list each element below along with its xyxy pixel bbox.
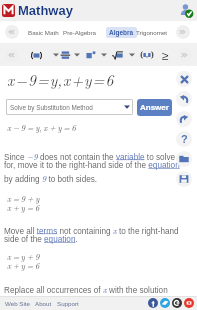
button[interactable]: More	[128, 49, 135, 61]
button[interactable]: More	[73, 49, 80, 61]
button[interactable]: Open	[176, 151, 192, 167]
staticText: Answer	[140, 103, 169, 112]
button[interactable]: YouTube	[184, 298, 194, 308]
staticText: for, move it to the right-hand side of t…	[4, 161, 180, 170]
button[interactable]: Previous categories	[5, 48, 19, 62]
staticText: Move all terms not containing x to the r…	[4, 224, 179, 236]
button[interactable]: Ordered pair	[139, 47, 154, 63]
staticText: x − 9 = y, x + y = 6	[7, 121, 76, 133]
button[interactable]: Parentheses	[27, 47, 45, 63]
button[interactable]: More	[100, 49, 107, 61]
button[interactable]: Twitter	[160, 298, 170, 308]
button[interactable]: Answer	[137, 99, 172, 116]
button[interactable]: Basic Math	[28, 29, 59, 36]
button[interactable]: Undo	[176, 91, 192, 107]
button[interactable]: Google Plus	[172, 298, 182, 308]
button[interactable]: Next categories	[176, 25, 190, 39]
staticText: x + y = 6	[7, 201, 40, 213]
staticText: Replace all occurrences of x with the so…	[4, 283, 168, 295]
staticText: ?	[181, 133, 188, 145]
button[interactable]: About	[35, 300, 52, 307]
staticText: x + y = 6	[7, 259, 40, 271]
staticText: Since −9 does not contain the variable t…	[4, 150, 176, 162]
button[interactable]: Account	[179, 3, 194, 18]
button[interactable]: Close	[176, 71, 192, 87]
button[interactable]: Previous categories	[5, 25, 19, 39]
button[interactable]: Algebra	[109, 29, 134, 36]
staticText: x − 9 = y, x + y = 6	[7, 69, 114, 91]
button[interactable]: Fraction	[58, 47, 73, 63]
button[interactable]: Next categories	[178, 48, 192, 62]
staticText: side of the equation.	[4, 235, 78, 244]
button[interactable]: Solve by Substitution Method	[6, 99, 133, 115]
button[interactable]: Help	[176, 131, 192, 147]
button[interactable]: Facebook	[148, 298, 158, 308]
button[interactable]: Greater than or equal	[159, 47, 171, 63]
button[interactable]: Web Site	[5, 300, 30, 307]
button[interactable]: Exponent	[84, 47, 98, 63]
staticText: Solve by Substitution Method	[10, 104, 93, 111]
button[interactable]: Save	[176, 171, 192, 187]
staticText: by adding 9 to both sides.	[4, 172, 98, 184]
button[interactable]: Support	[57, 300, 79, 307]
button[interactable]: Radical	[109, 47, 126, 63]
button[interactable]: Pre-Algebra	[63, 29, 97, 36]
button[interactable]: Trigonomet	[136, 29, 168, 36]
staticText: x = y + 9	[7, 250, 40, 262]
staticText: x = 9 + y	[7, 192, 40, 204]
button[interactable]: More	[52, 49, 59, 61]
staticText: Algebra	[109, 29, 134, 36]
staticText: ≥	[162, 49, 169, 62]
staticText: Mathway	[18, 3, 73, 18]
button[interactable]: Redo	[176, 111, 192, 127]
